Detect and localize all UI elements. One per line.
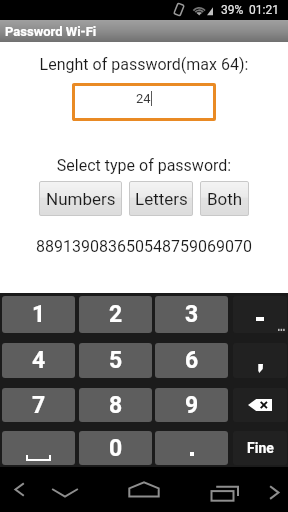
button[interactable]: Comma [233, 343, 287, 378]
staticText: Both [207, 189, 243, 209]
staticText: 0 [109, 435, 123, 462]
button[interactable]: Back [0, 467, 38, 512]
button[interactable]: 5 [79, 343, 152, 378]
button[interactable]: 8 [79, 388, 152, 422]
button[interactable]: Hide keyboard [40, 467, 90, 512]
button[interactable]: 4 [2, 343, 75, 378]
button[interactable]: 3 [155, 296, 228, 333]
other: Space [27, 455, 50, 460]
staticText: 6 [185, 347, 199, 374]
button[interactable]: 9 [155, 388, 228, 422]
staticText: 4 [32, 347, 46, 374]
button[interactable]: Letters [129, 181, 193, 216]
button[interactable]: Forward [252, 467, 288, 512]
button[interactable]: Recents [196, 467, 252, 512]
staticText: Password Wi-Fi [5, 24, 97, 39]
staticText: 24 [136, 91, 151, 106]
staticText: 889139083650548759069070 [0, 237, 288, 256]
button[interactable]: 7 [2, 388, 75, 422]
staticText: Lenght of password(max 64): [0, 55, 288, 74]
staticText: 1 [32, 301, 46, 328]
staticText: 39% [221, 3, 244, 17]
staticText: 5 [109, 347, 123, 374]
staticText: 01:21 [249, 3, 279, 17]
staticText: 8 [109, 392, 123, 419]
staticText: 3 [185, 301, 199, 328]
button[interactable]: Period [155, 431, 228, 465]
staticText: 9 [185, 392, 199, 419]
button[interactable]: 6 [155, 343, 228, 378]
staticText: Letters [135, 189, 188, 209]
button[interactable]: Both [200, 181, 249, 216]
button[interactable]: Backspace [233, 388, 287, 422]
button[interactable]: 0 [79, 431, 152, 465]
button[interactable]: Fine [233, 431, 287, 465]
staticText: Numbers [46, 189, 116, 209]
staticText: Fine [247, 440, 274, 456]
button[interactable]: 2 [79, 296, 152, 333]
staticText: 7 [32, 392, 46, 419]
other: Backspace [248, 399, 272, 411]
other: Comma [258, 364, 263, 373]
button[interactable]: Dash [233, 296, 287, 333]
button[interactable]: 24 [72, 83, 216, 121]
button[interactable]: Space [2, 431, 75, 465]
button[interactable]: Numbers [39, 181, 122, 216]
staticText: Select type of password: [0, 156, 288, 175]
button[interactable]: Home [110, 467, 178, 512]
staticText: 2 [109, 301, 123, 328]
button[interactable]: 1 [2, 296, 75, 333]
